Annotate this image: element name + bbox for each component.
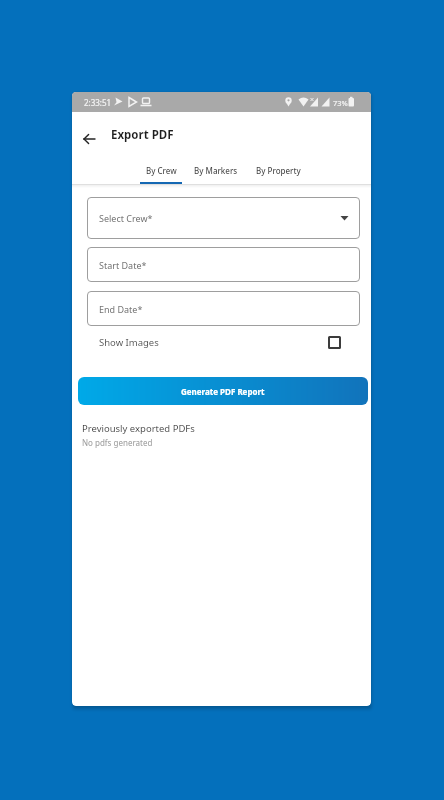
staticText: Start Date*: [99, 259, 147, 271]
button[interactable]: Select Crew*: [87, 197, 360, 239]
staticText: By Crew: [146, 165, 177, 176]
staticText: Previously exported PDFs: [82, 422, 195, 435]
staticText: By Property: [256, 165, 301, 176]
button[interactable]: Start Date*: [87, 247, 360, 282]
staticText: No pdfs generated: [82, 437, 153, 448]
staticText: By Markers: [194, 165, 238, 176]
button[interactable]: By Markers: [186, 160, 246, 184]
button[interactable]: [78, 128, 100, 150]
staticText: End Date*: [99, 303, 143, 315]
staticText: Export PDF: [111, 127, 174, 143]
staticText: Show Images: [99, 336, 159, 349]
button[interactable]: Show Images: [87, 330, 360, 355]
button[interactable]: End Date*: [87, 291, 360, 326]
button[interactable]: Generate PDF Report: [78, 377, 368, 405]
staticText: 73%: [333, 98, 348, 108]
staticText: Generate PDF Report: [181, 386, 265, 397]
staticText: Select Crew*: [99, 212, 153, 224]
button[interactable]: By Property: [248, 160, 308, 184]
staticText: 2:33:51: [84, 97, 112, 108]
button[interactable]: By Crew: [131, 160, 191, 184]
